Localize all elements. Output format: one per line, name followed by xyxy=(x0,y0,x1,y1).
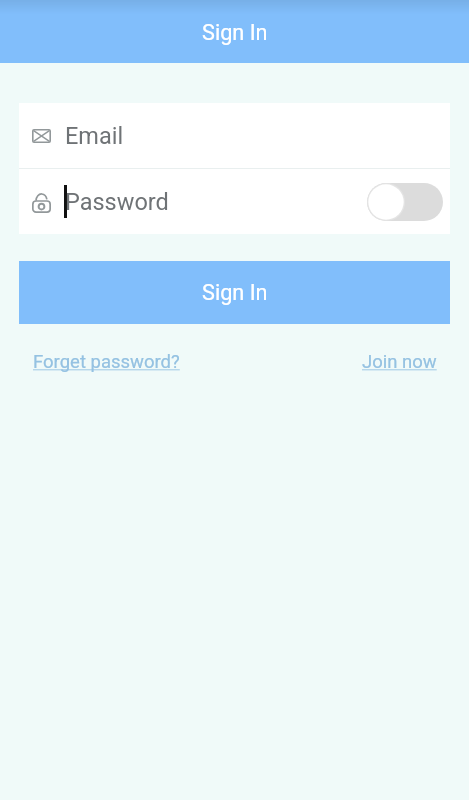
button[interactable]: Show password xyxy=(367,183,443,221)
button[interactable]: Join now xyxy=(356,347,443,377)
staticText: Email xyxy=(65,122,124,150)
staticText: Sign In xyxy=(202,20,268,45)
staticText: Join now xyxy=(362,351,437,373)
button[interactable]: Password xyxy=(19,169,450,234)
button[interactable]: Email xyxy=(19,103,450,168)
staticText: Forget password? xyxy=(33,351,180,373)
button[interactable]: Forget password? xyxy=(27,347,186,377)
button[interactable]: Sign In xyxy=(19,261,450,324)
staticText: Sign In xyxy=(202,280,268,305)
staticText: Password xyxy=(65,188,169,216)
